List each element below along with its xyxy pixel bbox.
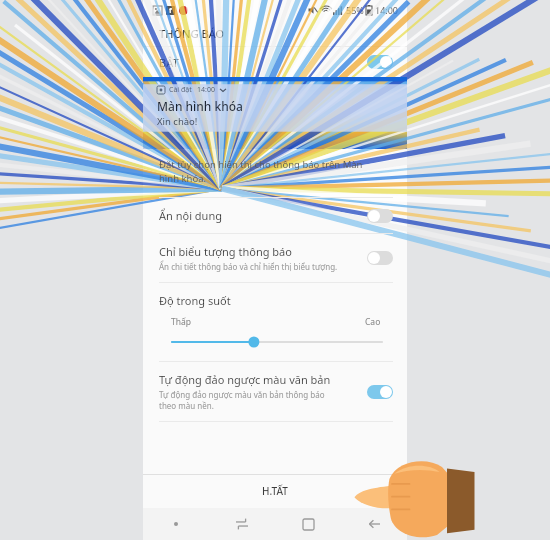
- button[interactable]: Chỉ biểu tượng thông báo: [143, 234, 407, 282]
- button[interactable]: Menu: [143, 508, 209, 540]
- staticText: Tự động đảo ngược màu văn bản: [159, 372, 331, 387]
- button[interactable]: [143, 335, 407, 349]
- button[interactable]: Recents: [209, 508, 275, 540]
- staticText: Ẩn nội dung: [159, 208, 222, 223]
- button[interactable]: Back: [341, 508, 407, 540]
- staticText: Đặt tùy chọn hiển thị cho thông báo trên…: [159, 158, 363, 185]
- staticText: 14:00: [375, 4, 399, 16]
- button[interactable]: Home: [275, 508, 341, 540]
- staticText: Xin chào!: [157, 115, 198, 128]
- staticText: THÔNG BÁO: [159, 26, 225, 41]
- staticText: Ẩn chi tiết thông báo và chỉ hiển thị bi…: [159, 261, 338, 272]
- staticText: Chỉ biểu tượng thông báo: [159, 244, 292, 259]
- staticText: Màn hình khóa: [157, 98, 243, 114]
- staticText: Thấp: [171, 316, 191, 328]
- staticText: Cài đặt: [169, 85, 192, 95]
- button[interactable]: BẬT: [143, 47, 407, 77]
- staticText: H.TẤT: [262, 484, 288, 498]
- staticText: BẬT: [159, 55, 179, 70]
- button[interactable]: Ẩn nội dung: [143, 198, 407, 233]
- staticText: 14:00: [197, 85, 215, 95]
- staticText: f: [169, 6, 172, 15]
- button[interactable]: Tự động đảo ngược màu văn bản: [143, 362, 407, 421]
- button[interactable]: H.TẤT: [143, 474, 407, 508]
- staticText: Độ trong suốt: [159, 293, 231, 308]
- staticText: Tự động đảo ngược màu văn bản thông báo …: [159, 389, 325, 411]
- staticText: Cao: [365, 316, 381, 328]
- staticText: 55%: [346, 4, 364, 16]
